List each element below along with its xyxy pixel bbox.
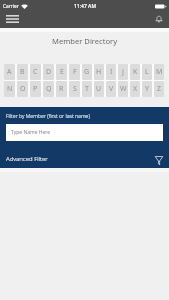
button[interactable]: N xyxy=(4,81,15,97)
button[interactable]: W xyxy=(118,81,128,97)
staticText: N xyxy=(7,84,13,94)
staticText: F xyxy=(73,67,77,77)
staticText: D xyxy=(46,67,52,77)
staticText: Advanced Filter xyxy=(6,155,48,163)
staticText: B xyxy=(20,67,25,77)
button[interactable]: O xyxy=(17,81,28,97)
staticText: G xyxy=(84,67,90,77)
button[interactable]: Q xyxy=(43,81,54,97)
staticText: P xyxy=(33,84,38,94)
button[interactable]: D xyxy=(43,64,54,80)
staticText: S xyxy=(73,84,77,94)
button[interactable]: T xyxy=(82,81,92,97)
staticText: X xyxy=(133,84,138,94)
staticText: O xyxy=(20,84,26,94)
staticText: L xyxy=(145,67,149,77)
button[interactable]: Y xyxy=(142,81,152,97)
staticText: Q xyxy=(46,84,52,94)
button[interactable]: Menu xyxy=(1,11,24,27)
button[interactable]: P xyxy=(30,81,41,97)
button[interactable]: M xyxy=(154,64,164,80)
staticText: 11:47 AM xyxy=(74,3,96,10)
staticText: R xyxy=(59,84,64,94)
staticText: Type Name Here xyxy=(11,129,51,136)
button[interactable]: B xyxy=(17,64,28,80)
staticText: Z xyxy=(157,84,162,94)
button[interactable]: G xyxy=(82,64,92,80)
button[interactable]: F xyxy=(69,64,80,80)
button[interactable]: L xyxy=(142,64,152,80)
staticText: Carrier xyxy=(3,3,19,10)
staticText: M xyxy=(156,67,163,77)
staticText: Filter by Member (first or last name) xyxy=(6,112,90,119)
staticText: V xyxy=(109,84,114,94)
staticText: E xyxy=(60,67,64,77)
button[interactable]: I xyxy=(106,64,116,80)
button[interactable]: X xyxy=(130,81,140,97)
staticText: W xyxy=(120,84,127,94)
staticText: I xyxy=(110,67,113,77)
staticText: A xyxy=(7,67,12,77)
button[interactable]: Advanced Filter xyxy=(0,150,169,167)
staticText: T xyxy=(85,84,89,94)
staticText: Member Directory xyxy=(52,36,118,46)
staticText: K xyxy=(133,67,138,77)
staticText: H xyxy=(96,67,102,77)
button[interactable]: K xyxy=(130,64,140,80)
staticText: J xyxy=(122,67,124,77)
button[interactable]: Notifications xyxy=(152,12,166,26)
button[interactable]: Z xyxy=(154,81,164,97)
button[interactable]: J xyxy=(118,64,128,80)
staticText: C xyxy=(33,67,38,77)
button[interactable]: Type Name Here xyxy=(6,124,163,141)
button[interactable]: H xyxy=(94,64,104,80)
button[interactable]: E xyxy=(56,64,67,80)
button[interactable]: A xyxy=(4,64,15,80)
staticText: U xyxy=(96,84,102,94)
button[interactable]: U xyxy=(94,81,104,97)
button[interactable]: V xyxy=(106,81,116,97)
button[interactable]: C xyxy=(30,64,41,80)
button[interactable]: R xyxy=(56,81,67,97)
button[interactable]: S xyxy=(69,81,80,97)
staticText: Y xyxy=(145,84,149,94)
